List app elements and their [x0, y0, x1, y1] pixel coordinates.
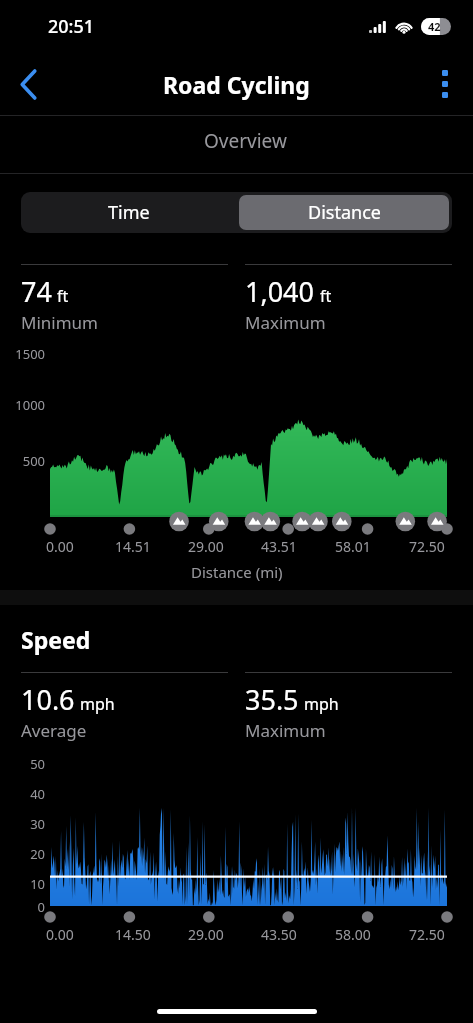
staticText: 20:51: [48, 14, 95, 39]
staticText: Time: [108, 200, 150, 225]
button[interactable]: Time: [21, 192, 236, 233]
staticText: Distance: [308, 200, 381, 225]
staticText: 10: [0, 875, 45, 893]
staticText: 1500: [0, 345, 45, 363]
staticText: 42: [428, 19, 441, 34]
staticText: 0: [0, 898, 45, 916]
staticText: 1000: [0, 396, 45, 414]
staticText: 40: [0, 785, 45, 803]
staticText: 72.50: [409, 925, 445, 944]
staticText: 43.50: [261, 925, 297, 944]
staticText: 500: [0, 452, 45, 470]
button[interactable]: Overview: [17, 116, 473, 174]
staticText: mph: [80, 693, 115, 715]
staticText: Maximum: [245, 311, 326, 334]
button[interactable]: Distance: [239, 195, 449, 230]
staticText: Speed: [21, 624, 91, 655]
staticText: 10.6: [21, 681, 75, 718]
staticText: 30: [0, 815, 45, 833]
staticText: 29.00: [188, 925, 224, 944]
staticText: Overview: [204, 128, 287, 154]
staticText: Maximum: [245, 719, 326, 742]
staticText: ft: [57, 285, 69, 307]
staticText: 29.00: [188, 537, 224, 556]
staticText: 74: [21, 273, 52, 310]
staticText: Distance (mi): [191, 562, 283, 582]
staticText: 43.51: [261, 537, 297, 556]
staticText: mph: [304, 693, 339, 715]
staticText: ft: [320, 285, 332, 307]
button[interactable]: More options: [417, 56, 473, 112]
staticText: 58.01: [335, 537, 371, 556]
staticText: 72.50: [409, 537, 445, 556]
staticText: 14.51: [115, 537, 151, 556]
staticText: 58.00: [335, 925, 371, 944]
staticText: 14.50: [115, 925, 151, 944]
staticText: 0.00: [46, 925, 74, 944]
staticText: 0.00: [46, 537, 74, 556]
staticText: 35.5: [245, 681, 299, 718]
button[interactable]: Back: [0, 56, 56, 112]
staticText: Road Cycling: [163, 69, 310, 100]
staticText: 20: [0, 845, 45, 863]
staticText: Average: [21, 719, 87, 742]
staticText: 50: [0, 755, 45, 773]
staticText: 1,040: [245, 273, 315, 310]
staticText: Minimum: [21, 311, 98, 334]
